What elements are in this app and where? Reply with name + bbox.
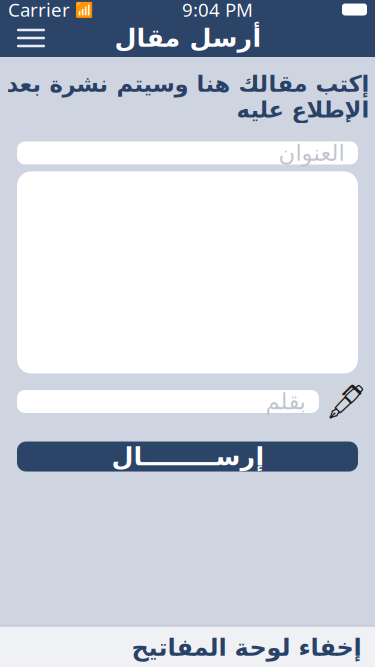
staticText: إكتب مقالك هنا وسيتم نشرة بعد الإطلاع عل…	[6, 71, 369, 122]
staticText: 🖋	[325, 382, 367, 421]
button[interactable]: إرســــــــال	[17, 441, 358, 471]
button[interactable]: إخفاء لوحة المفاتيح	[117, 626, 375, 667]
staticText: إرســــــــال	[111, 442, 264, 471]
button[interactable]: العنوان	[17, 141, 358, 164]
staticText: 📶	[75, 1, 93, 18]
staticText: أرسل مقال	[114, 24, 261, 52]
button[interactable]: بقلم	[17, 390, 319, 413]
staticText: 9:04 PM	[182, 0, 253, 22]
staticText: إخفاء لوحة المفاتيح	[131, 634, 361, 661]
staticText: العنوان	[278, 140, 344, 166]
staticText: Carrier	[8, 0, 70, 22]
staticText: بقلم	[265, 389, 305, 414]
button[interactable]: Menu	[8, 20, 54, 56]
